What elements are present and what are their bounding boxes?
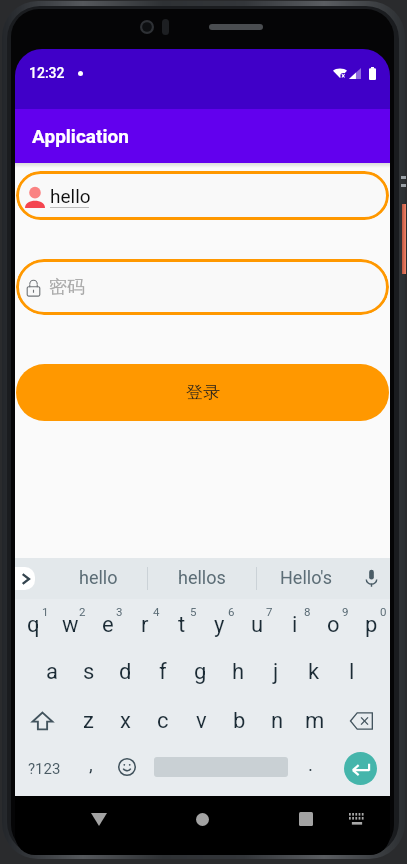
button[interactable]: Hello's xyxy=(257,558,354,599)
staticText: q xyxy=(27,612,40,638)
button[interactable]: Emoji xyxy=(108,745,146,796)
button[interactable]: Home xyxy=(179,806,226,832)
button[interactable]: 8 xyxy=(276,599,314,648)
staticText: . xyxy=(308,753,314,775)
staticText: u xyxy=(251,612,264,638)
staticText: 4 xyxy=(153,605,160,618)
staticText: Application xyxy=(32,125,129,147)
button[interactable]: More suggestions xyxy=(15,567,35,590)
button[interactable]: a xyxy=(33,648,70,697)
button[interactable]: j xyxy=(257,648,295,697)
button[interactable]: Switch keyboard xyxy=(340,806,373,832)
staticText: b xyxy=(233,708,246,734)
staticText: , xyxy=(89,753,93,775)
button[interactable]: 5 xyxy=(163,599,200,648)
button[interactable]: 密码 xyxy=(16,259,389,315)
button[interactable]: 9 xyxy=(314,599,352,648)
button[interactable]: 6 xyxy=(200,599,238,648)
button[interactable]: z xyxy=(70,697,107,745)
staticText: o xyxy=(327,612,340,638)
staticText: t xyxy=(178,612,186,638)
button[interactable]: hellos xyxy=(148,558,256,599)
button[interactable]: Shift xyxy=(15,697,70,745)
button[interactable]: 0 xyxy=(352,599,390,648)
button[interactable]: 3 xyxy=(89,599,126,648)
staticText: w xyxy=(62,612,79,638)
staticText: h xyxy=(232,659,245,685)
staticText: v xyxy=(196,708,207,734)
button[interactable]: Recents xyxy=(282,806,329,832)
button[interactable]: x xyxy=(107,697,144,745)
staticText: e xyxy=(102,612,114,638)
staticText: 0 xyxy=(380,605,387,618)
button[interactable]: ?123 xyxy=(15,745,70,796)
button[interactable]: n xyxy=(258,697,296,745)
staticText: f xyxy=(159,659,167,685)
button[interactable]: hello xyxy=(16,171,389,220)
staticText: s xyxy=(83,659,95,685)
staticText: hellos xyxy=(178,567,226,588)
staticText: k xyxy=(308,659,320,685)
button[interactable]: f xyxy=(144,648,181,697)
button[interactable]: hello xyxy=(35,558,147,599)
staticText: hello xyxy=(79,567,118,588)
button[interactable]: 1 xyxy=(15,599,52,648)
button[interactable]: Space xyxy=(146,745,296,796)
button[interactable]: Enter xyxy=(334,745,390,796)
staticText: 12:32 xyxy=(29,65,65,81)
staticText: 6 xyxy=(228,605,235,618)
button[interactable]: Back xyxy=(75,806,122,832)
button[interactable]: b xyxy=(220,697,258,745)
staticText: 2 xyxy=(79,605,86,618)
staticText: 登录 xyxy=(186,382,220,403)
staticText: a xyxy=(46,659,58,685)
staticText: p xyxy=(365,612,378,638)
staticText: 1 xyxy=(42,605,49,618)
staticText: Hello's xyxy=(280,567,332,588)
button[interactable]: d xyxy=(107,648,144,697)
staticText: 3 xyxy=(116,605,123,618)
staticText: r xyxy=(141,612,149,638)
button[interactable]: l xyxy=(333,648,371,697)
button[interactable]: Voice input xyxy=(354,558,390,599)
staticText: 9 xyxy=(342,605,349,618)
staticText: y xyxy=(214,612,225,638)
button[interactable]: Backspace xyxy=(334,697,390,745)
staticText: c xyxy=(157,708,169,734)
staticText: l xyxy=(349,659,355,685)
staticText: 8 xyxy=(304,605,311,618)
button[interactable]: m xyxy=(296,697,334,745)
button[interactable]: 2 xyxy=(52,599,89,648)
staticText: 密码 xyxy=(49,276,85,299)
staticText: i xyxy=(292,612,298,638)
button[interactable]: c xyxy=(144,697,182,745)
button[interactable]: s xyxy=(70,648,107,697)
staticText: 7 xyxy=(266,605,273,618)
button[interactable]: v xyxy=(182,697,220,745)
staticText: m xyxy=(305,708,325,734)
button[interactable]: 7 xyxy=(238,599,276,648)
staticText: g xyxy=(194,659,207,685)
staticText: d xyxy=(119,659,132,685)
button[interactable]: , xyxy=(70,745,108,796)
staticText: x xyxy=(120,708,131,734)
button[interactable]: h xyxy=(219,648,257,697)
button[interactable]: 4 xyxy=(126,599,163,648)
button[interactable]: k xyxy=(295,648,333,697)
staticText: hello xyxy=(50,185,91,207)
button[interactable]: . xyxy=(296,745,334,796)
staticText: ?123 xyxy=(28,760,61,778)
staticText: z xyxy=(83,708,94,734)
button[interactable]: 登录 xyxy=(16,364,389,421)
staticText: j xyxy=(273,659,279,685)
button[interactable]: g xyxy=(181,648,219,697)
staticText: 5 xyxy=(190,605,197,618)
staticText: n xyxy=(271,708,284,734)
